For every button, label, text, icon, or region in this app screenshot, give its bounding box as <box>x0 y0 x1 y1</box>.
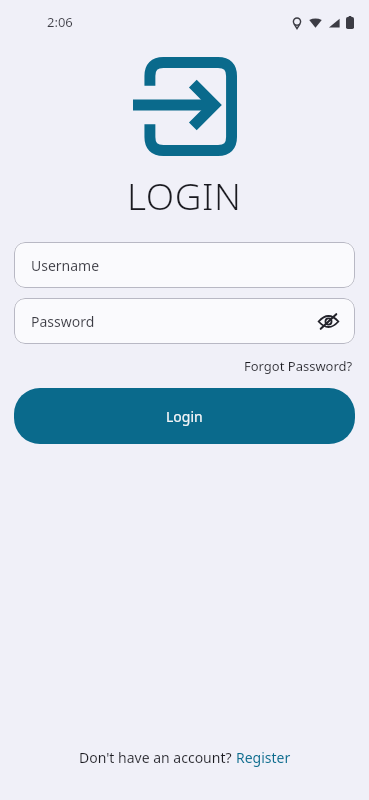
staticText: Password <box>31 312 95 331</box>
staticText: Forgot Password? <box>244 357 353 375</box>
button[interactable]: Toggle password visibility <box>311 304 345 338</box>
staticText: Username <box>31 256 100 275</box>
staticText: Register <box>236 748 291 767</box>
staticText: Don't have an account? <box>79 748 236 767</box>
button[interactable]: Register <box>236 748 291 767</box>
staticText: Login <box>166 407 203 426</box>
button[interactable]: Forgot Password? <box>242 354 355 378</box>
staticText: LOGIN <box>127 170 242 220</box>
button[interactable]: Username <box>14 242 355 288</box>
staticText: 2:06 <box>47 13 73 31</box>
button[interactable]: Login <box>14 388 355 444</box>
button[interactable]: Password <box>14 298 355 344</box>
